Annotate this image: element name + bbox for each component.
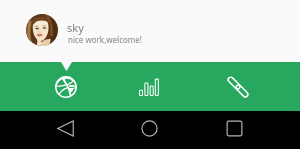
button[interactable]: Dribbble	[38, 62, 94, 111]
button[interactable]: Link	[210, 62, 266, 111]
button[interactable]: Back	[37, 111, 93, 149]
button[interactable]: Home	[121, 111, 177, 149]
staticText: nice work,welcome!	[68, 34, 142, 45]
button[interactable]: Stats	[121, 62, 177, 111]
staticText: sky	[67, 20, 84, 35]
button[interactable]: Profile photo	[26, 14, 58, 46]
button[interactable]: Recents	[206, 111, 262, 149]
